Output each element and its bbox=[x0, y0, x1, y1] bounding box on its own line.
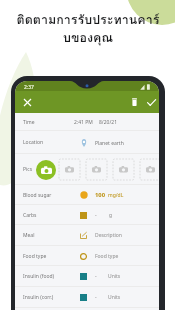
staticText: 100 bbox=[95, 191, 105, 199]
button[interactable]: Add picture bbox=[140, 159, 159, 180]
staticText: Blood sugar bbox=[23, 192, 52, 199]
button[interactable]: Take picture bbox=[36, 160, 56, 180]
button[interactable]: Blood sugar bbox=[15, 185, 159, 205]
button[interactable]: Add picture bbox=[59, 159, 80, 180]
staticText: Description bbox=[95, 232, 122, 239]
staticText: mg/dL bbox=[108, 192, 124, 199]
staticText: Meal bbox=[23, 232, 35, 239]
staticText: - bbox=[95, 212, 97, 219]
staticText: 2:37 bbox=[24, 84, 34, 91]
staticText: Location bbox=[23, 139, 44, 146]
staticText: - bbox=[95, 273, 97, 280]
button[interactable]: Pics bbox=[15, 154, 159, 185]
staticText: - bbox=[95, 294, 97, 301]
button[interactable]: Food type bbox=[15, 246, 159, 266]
staticText: Food type bbox=[23, 253, 47, 260]
button[interactable]: Meal bbox=[15, 225, 159, 246]
staticText: 2:41 PM bbox=[74, 119, 93, 126]
button[interactable]: Add picture bbox=[113, 159, 134, 180]
staticText: Planet earth bbox=[95, 140, 124, 147]
staticText: g bbox=[109, 212, 113, 219]
button[interactable]: Add picture bbox=[86, 159, 107, 180]
button[interactable]: Carbs bbox=[15, 205, 159, 225]
button[interactable]: Location bbox=[15, 131, 159, 154]
staticText: Time bbox=[23, 119, 35, 126]
staticText: Units bbox=[108, 273, 121, 280]
button[interactable]: Delete bbox=[127, 95, 141, 109]
staticText: Carbs bbox=[23, 212, 37, 219]
button[interactable]: Close bbox=[20, 95, 34, 109]
button[interactable]: Insulin (food) bbox=[15, 266, 159, 287]
staticText: Units bbox=[108, 294, 121, 301]
button[interactable]: Save bbox=[144, 95, 158, 109]
staticText: Food type bbox=[95, 253, 119, 260]
staticText: ติดตามการรับประทานคาร์ บของคุณ bbox=[2, 10, 174, 48]
staticText: Insulin (corr.) bbox=[23, 294, 54, 301]
button[interactable]: Insulin (corr.) bbox=[15, 287, 159, 308]
staticText: Insulin (food) bbox=[23, 273, 55, 280]
button[interactable]: Time bbox=[15, 113, 159, 131]
staticText: 8/20/21 bbox=[99, 119, 118, 126]
staticText: Pics bbox=[23, 166, 33, 173]
